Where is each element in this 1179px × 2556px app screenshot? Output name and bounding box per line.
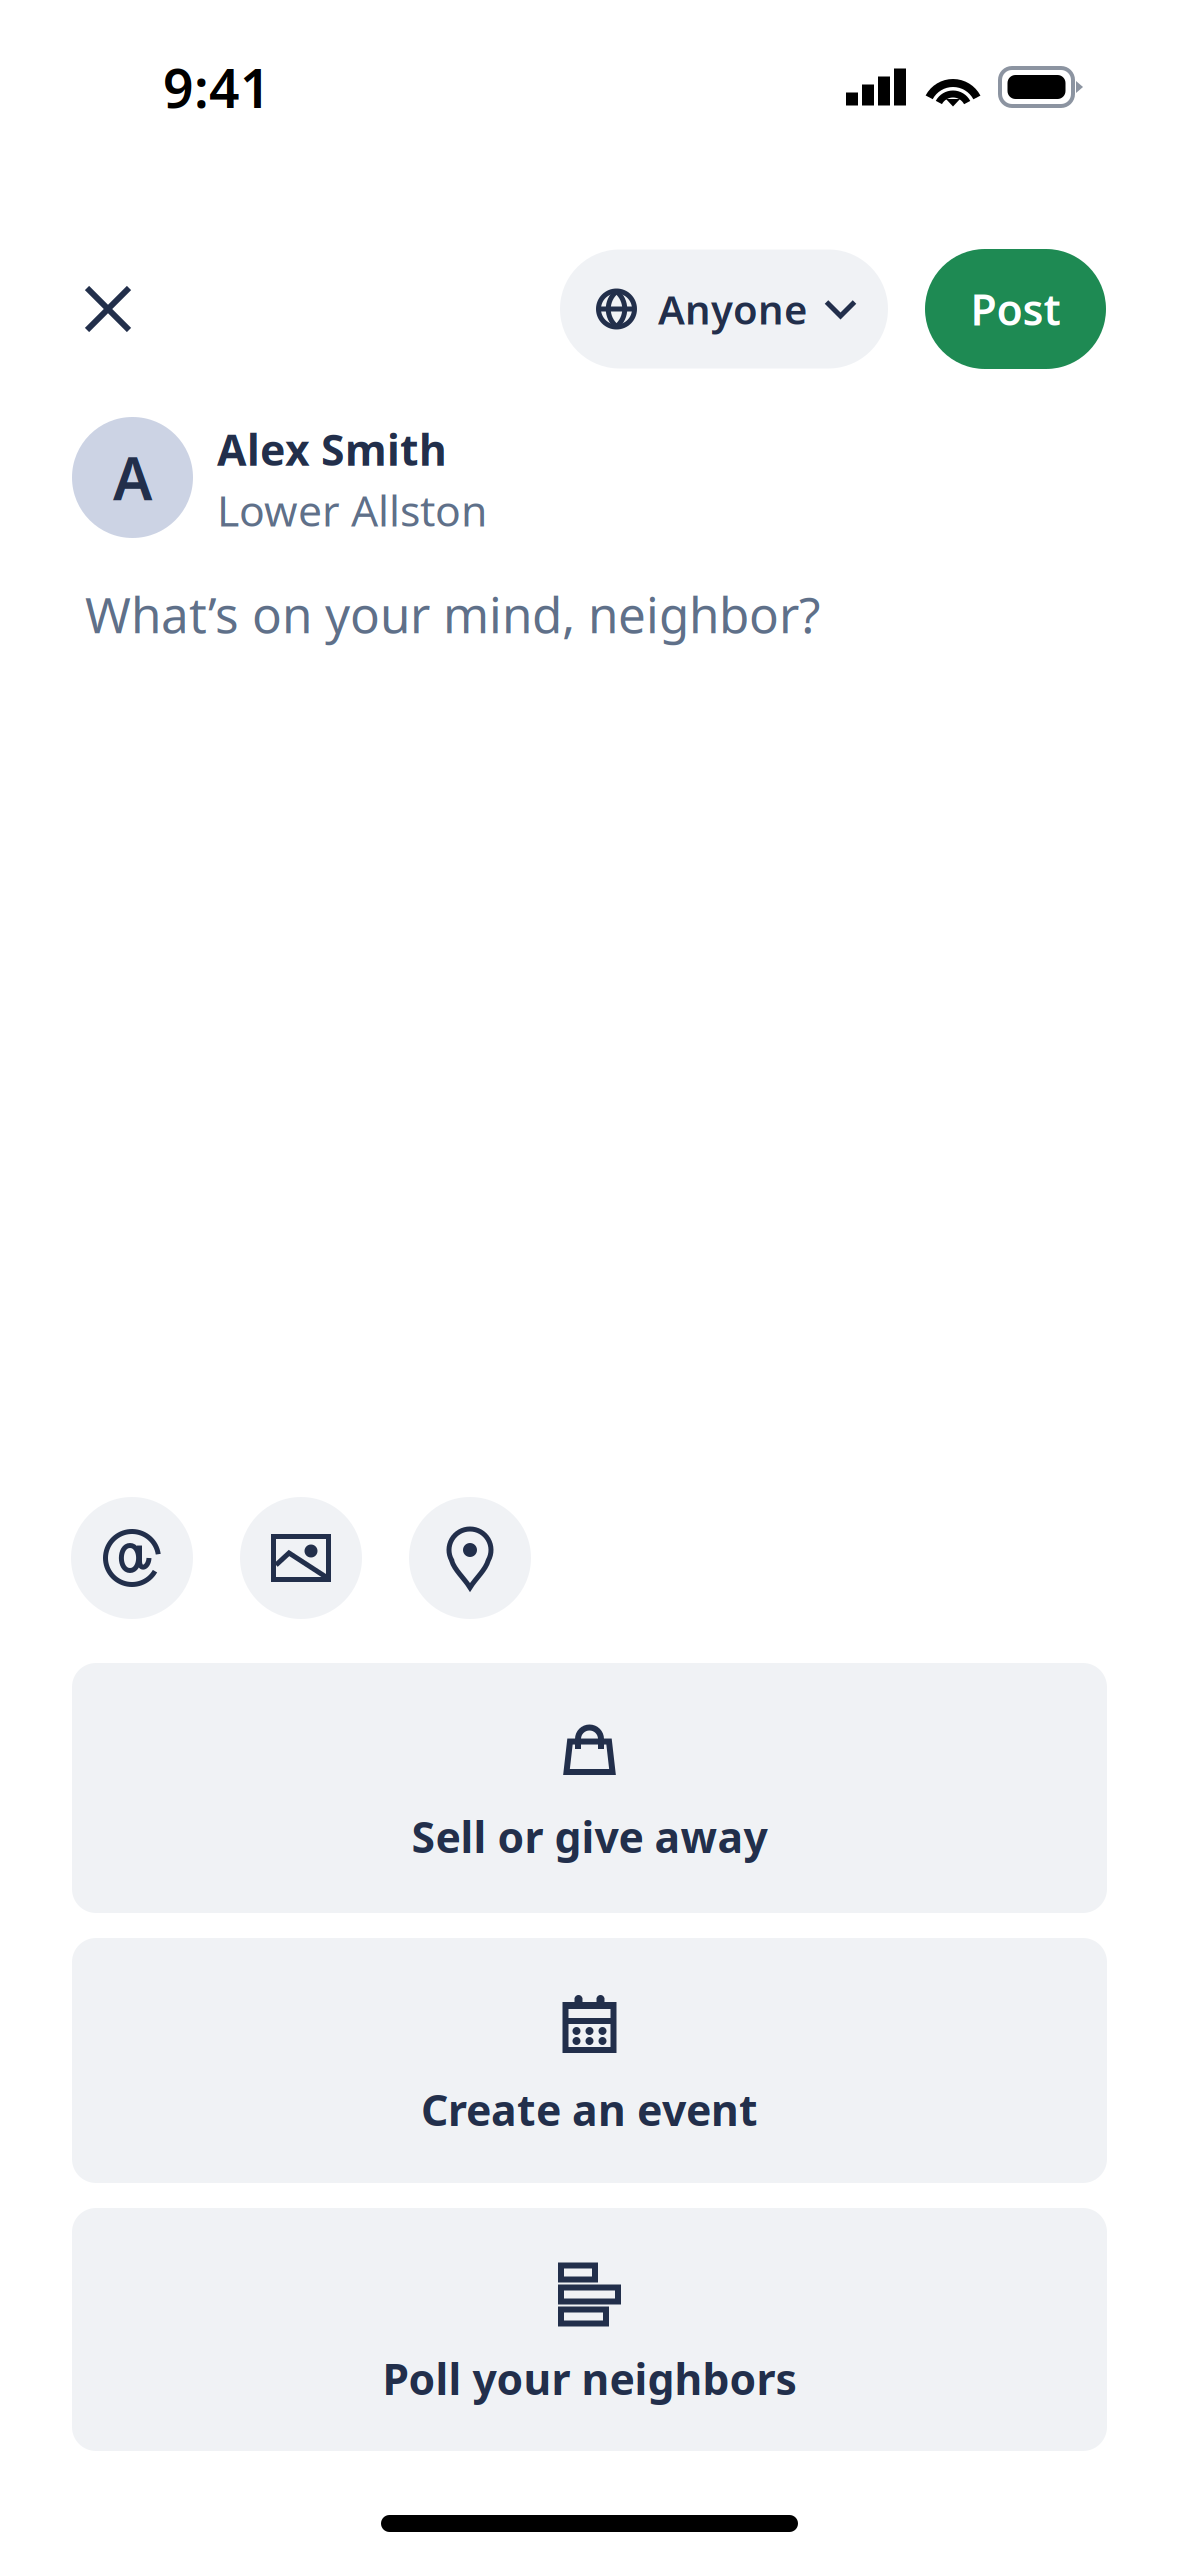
button[interactable]: Anyone (560, 249, 888, 368)
button[interactable]: What’s on your mind, neighbor? (0, 586, 1179, 642)
staticText: Anyone (658, 282, 807, 335)
button[interactable]: Close (36, 249, 168, 369)
staticText: Lower Allston (217, 481, 487, 538)
staticText: Sell or give away (411, 1808, 767, 1865)
button[interactable]: Poll your neighbors (72, 2208, 1107, 2451)
staticText: Post (970, 281, 1060, 337)
button[interactable]: Post (925, 249, 1106, 369)
staticText: What’s on your mind, neighbor? (85, 581, 820, 647)
button[interactable]: Create an event (72, 1938, 1107, 2183)
staticText: Create an event (421, 2081, 758, 2138)
staticText: A (113, 438, 152, 516)
staticText: 9:41 (163, 52, 271, 123)
staticText: Poll your neighbors (382, 2350, 796, 2407)
button[interactable]: Sell or give away (72, 1663, 1107, 1913)
button[interactable]: Mention a neighbor (71, 1497, 193, 1619)
button[interactable]: Add a location (409, 1497, 531, 1619)
button[interactable]: Add a photo (240, 1497, 362, 1619)
staticText: Alex Smith (217, 421, 447, 477)
